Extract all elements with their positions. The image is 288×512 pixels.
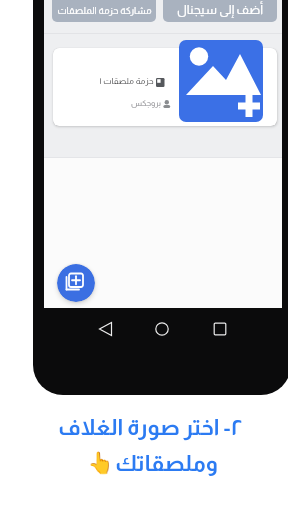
button[interactable]: أضف إلى سيجنال: [163, 0, 277, 22]
button[interactable]: [53, 48, 277, 126]
staticText: وملصقاتك: [115, 451, 218, 476]
staticText: بروجكس: [131, 99, 161, 108]
button[interactable]: مشاركة حزمة الملصقات: [52, 0, 156, 22]
staticText: مشاركة حزمة الملصقات: [57, 5, 152, 16]
staticText: أضف إلى سيجنال: [177, 3, 263, 17]
button[interactable]: [57, 264, 95, 302]
staticText: 👆: [87, 451, 114, 476]
staticText: حزمة ملصقات ١: [99, 76, 154, 85]
staticText: ٢- اختر صورة الغلاف: [58, 415, 243, 440]
